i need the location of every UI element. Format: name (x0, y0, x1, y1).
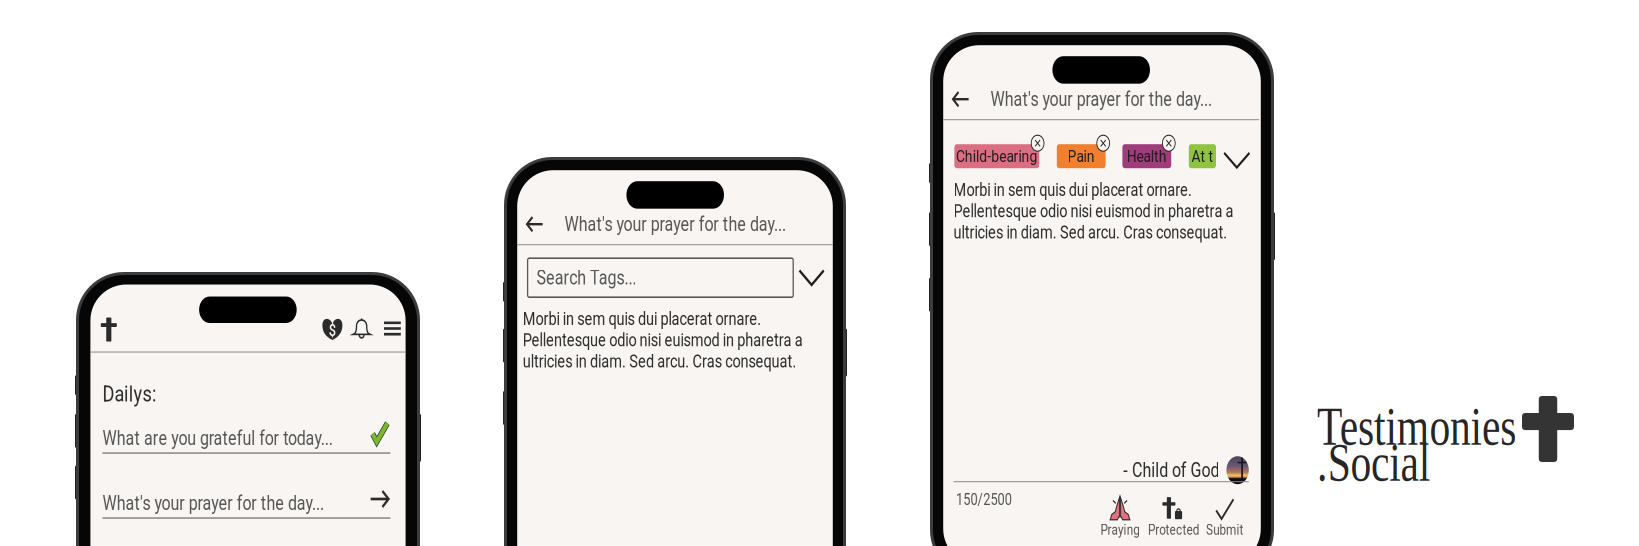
button[interactable]: Back (950, 87, 980, 111)
button[interactable]: Home (103, 314, 135, 344)
staticText: - Child of God (1168, 458, 1288, 482)
staticText: Health (1173, 146, 1223, 166)
button[interactable]: What's your prayer for the day... (105, 491, 465, 518)
button[interactable]: Protected (1198, 498, 1264, 538)
button[interactable]: Submit (1262, 498, 1328, 538)
button[interactable]: Back (524, 212, 554, 236)
staticText: .Social (1317, 432, 1466, 492)
staticText: Search Tags... (541, 266, 666, 289)
staticText: Dailys: (105, 380, 172, 407)
button[interactable]: Donate (378, 316, 407, 342)
staticText: $ (388, 321, 397, 340)
staticText: Morbi in sem quis dui placerat ornare. P… (956, 179, 1306, 243)
staticText: 150/2500 (959, 490, 1029, 509)
staticText: Submit (1272, 521, 1319, 538)
button[interactable]: Pain (1085, 144, 1146, 168)
staticText: What's your prayer for the day... (105, 491, 382, 515)
staticText: Protected (1199, 521, 1263, 538)
staticText: Testimonies (1317, 396, 1579, 456)
button[interactable]: Child-bearing (957, 144, 1063, 168)
staticText: What are you grateful for today... (105, 426, 393, 450)
button[interactable]: What are you grateful for today... (105, 426, 465, 453)
staticText: At t (1254, 146, 1281, 166)
staticText: Child-bearing (959, 146, 1061, 166)
button[interactable]: Health (1167, 144, 1228, 168)
button[interactable]: Search Tags... (530, 258, 862, 297)
button[interactable]: At t (1250, 144, 1284, 168)
button[interactable]: Praying (1131, 498, 1197, 538)
button[interactable]: Notifications (416, 315, 442, 341)
staticText: What's your prayer for the day... (1002, 87, 1279, 111)
staticText: Pain (1099, 146, 1133, 166)
staticText: What's your prayer for the day... (576, 212, 853, 236)
staticText: Praying (1140, 521, 1189, 538)
staticText: Morbi in sem quis dui placerat ornare. P… (524, 308, 874, 372)
